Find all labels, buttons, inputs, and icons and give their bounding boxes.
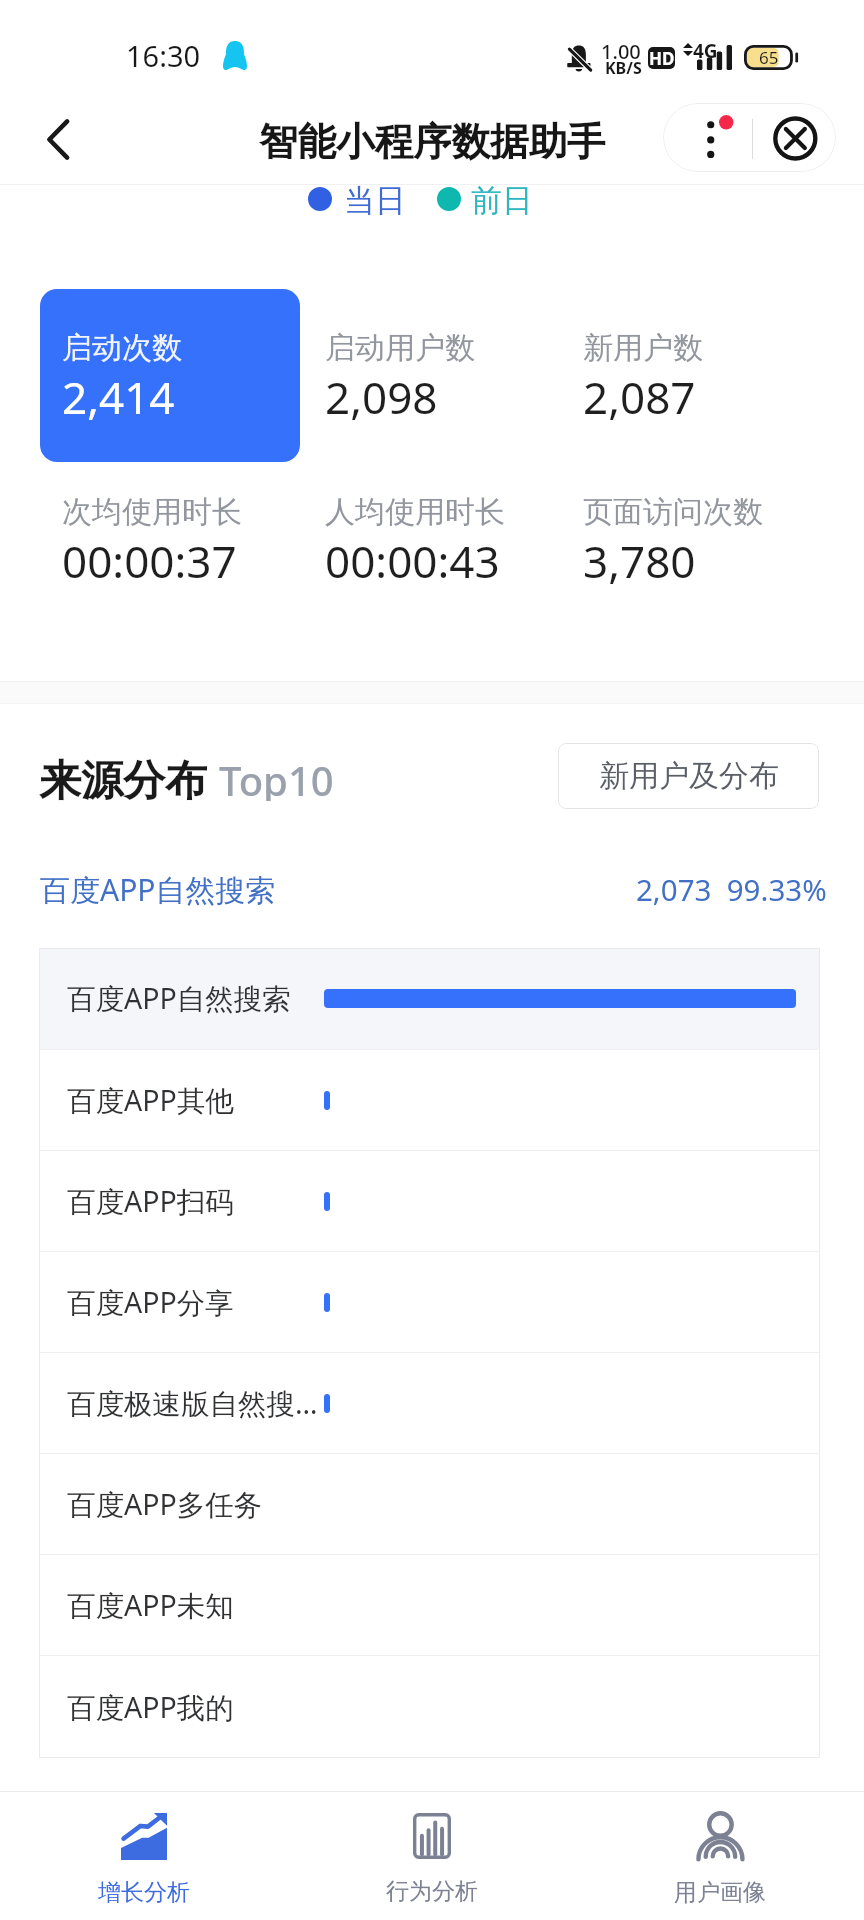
staticText: 百度APP自然搜索	[67, 979, 291, 1018]
staticText: 启动用户数	[325, 329, 475, 367]
button[interactable]: 增长分析	[0, 1791, 288, 1920]
staticText: 行为分析	[386, 1877, 478, 1906]
staticText: 00:00:37	[62, 531, 237, 591]
staticText: 前日	[471, 181, 533, 220]
staticText: 百度APP我的	[67, 1688, 234, 1727]
staticText: 3,780	[583, 531, 696, 591]
staticText: 2,414	[62, 367, 175, 427]
button[interactable]: 百度APP我的	[39, 1656, 820, 1758]
staticText: 增长分析	[98, 1878, 190, 1907]
staticText: 2,098	[325, 367, 438, 427]
button[interactable]: 百度APP分享	[39, 1252, 820, 1352]
staticText: 来源分布	[39, 755, 207, 803]
staticText: 人均使用时长	[325, 493, 505, 531]
staticText: 百度极速版自然搜…	[67, 1384, 318, 1423]
staticText: 用户画像	[674, 1878, 766, 1907]
staticText: 00:00:43	[325, 531, 500, 591]
button[interactable]: 百度APP自然搜索	[39, 948, 820, 1049]
button[interactable]: 行为分析	[288, 1791, 576, 1920]
staticText: 16:30	[126, 36, 201, 75]
staticText: HD	[649, 47, 675, 69]
staticText: 百度APP多任务	[67, 1485, 263, 1524]
button[interactable]: 百度APP未知	[39, 1555, 820, 1655]
button[interactable]: 百度APP其他	[39, 1050, 820, 1150]
staticText: 当日	[344, 181, 406, 220]
staticText: 百度APP自然搜索	[40, 869, 276, 910]
staticText: 百度APP扫码	[67, 1182, 234, 1221]
button[interactable]: Close	[753, 103, 836, 172]
staticText: 启动次数	[62, 329, 182, 367]
staticText: 百度APP其他	[67, 1081, 234, 1120]
staticText: 智能小程序数据助手	[259, 118, 606, 167]
button[interactable]: 启动次数	[40, 289, 300, 462]
button[interactable]: 百度极速版自然搜…	[39, 1353, 820, 1453]
staticText: 2,087	[583, 367, 696, 427]
staticText: 百度APP分享	[67, 1283, 234, 1322]
staticText: 新用户数	[583, 329, 703, 367]
staticText: 次均使用时长	[62, 493, 242, 531]
button[interactable]: More options	[663, 103, 749, 172]
button[interactable]: 新用户及分布	[558, 743, 819, 809]
button[interactable]: 用户画像	[576, 1791, 864, 1920]
button[interactable]: 百度APP扫码	[39, 1151, 820, 1251]
staticText: Top10	[219, 753, 334, 801]
staticText: 1.00	[601, 38, 641, 65]
staticText: 2,073 99.33%	[636, 869, 827, 909]
staticText: 4G	[693, 38, 718, 64]
button[interactable]: Back	[27, 108, 89, 170]
staticText: 百度APP未知	[67, 1586, 234, 1625]
button[interactable]: 百度APP多任务	[39, 1454, 820, 1554]
staticText: KB/S	[605, 57, 642, 79]
staticText: 新用户及分布	[599, 757, 779, 795]
staticText: 页面访问次数	[583, 493, 763, 531]
staticText: 65	[759, 46, 779, 69]
